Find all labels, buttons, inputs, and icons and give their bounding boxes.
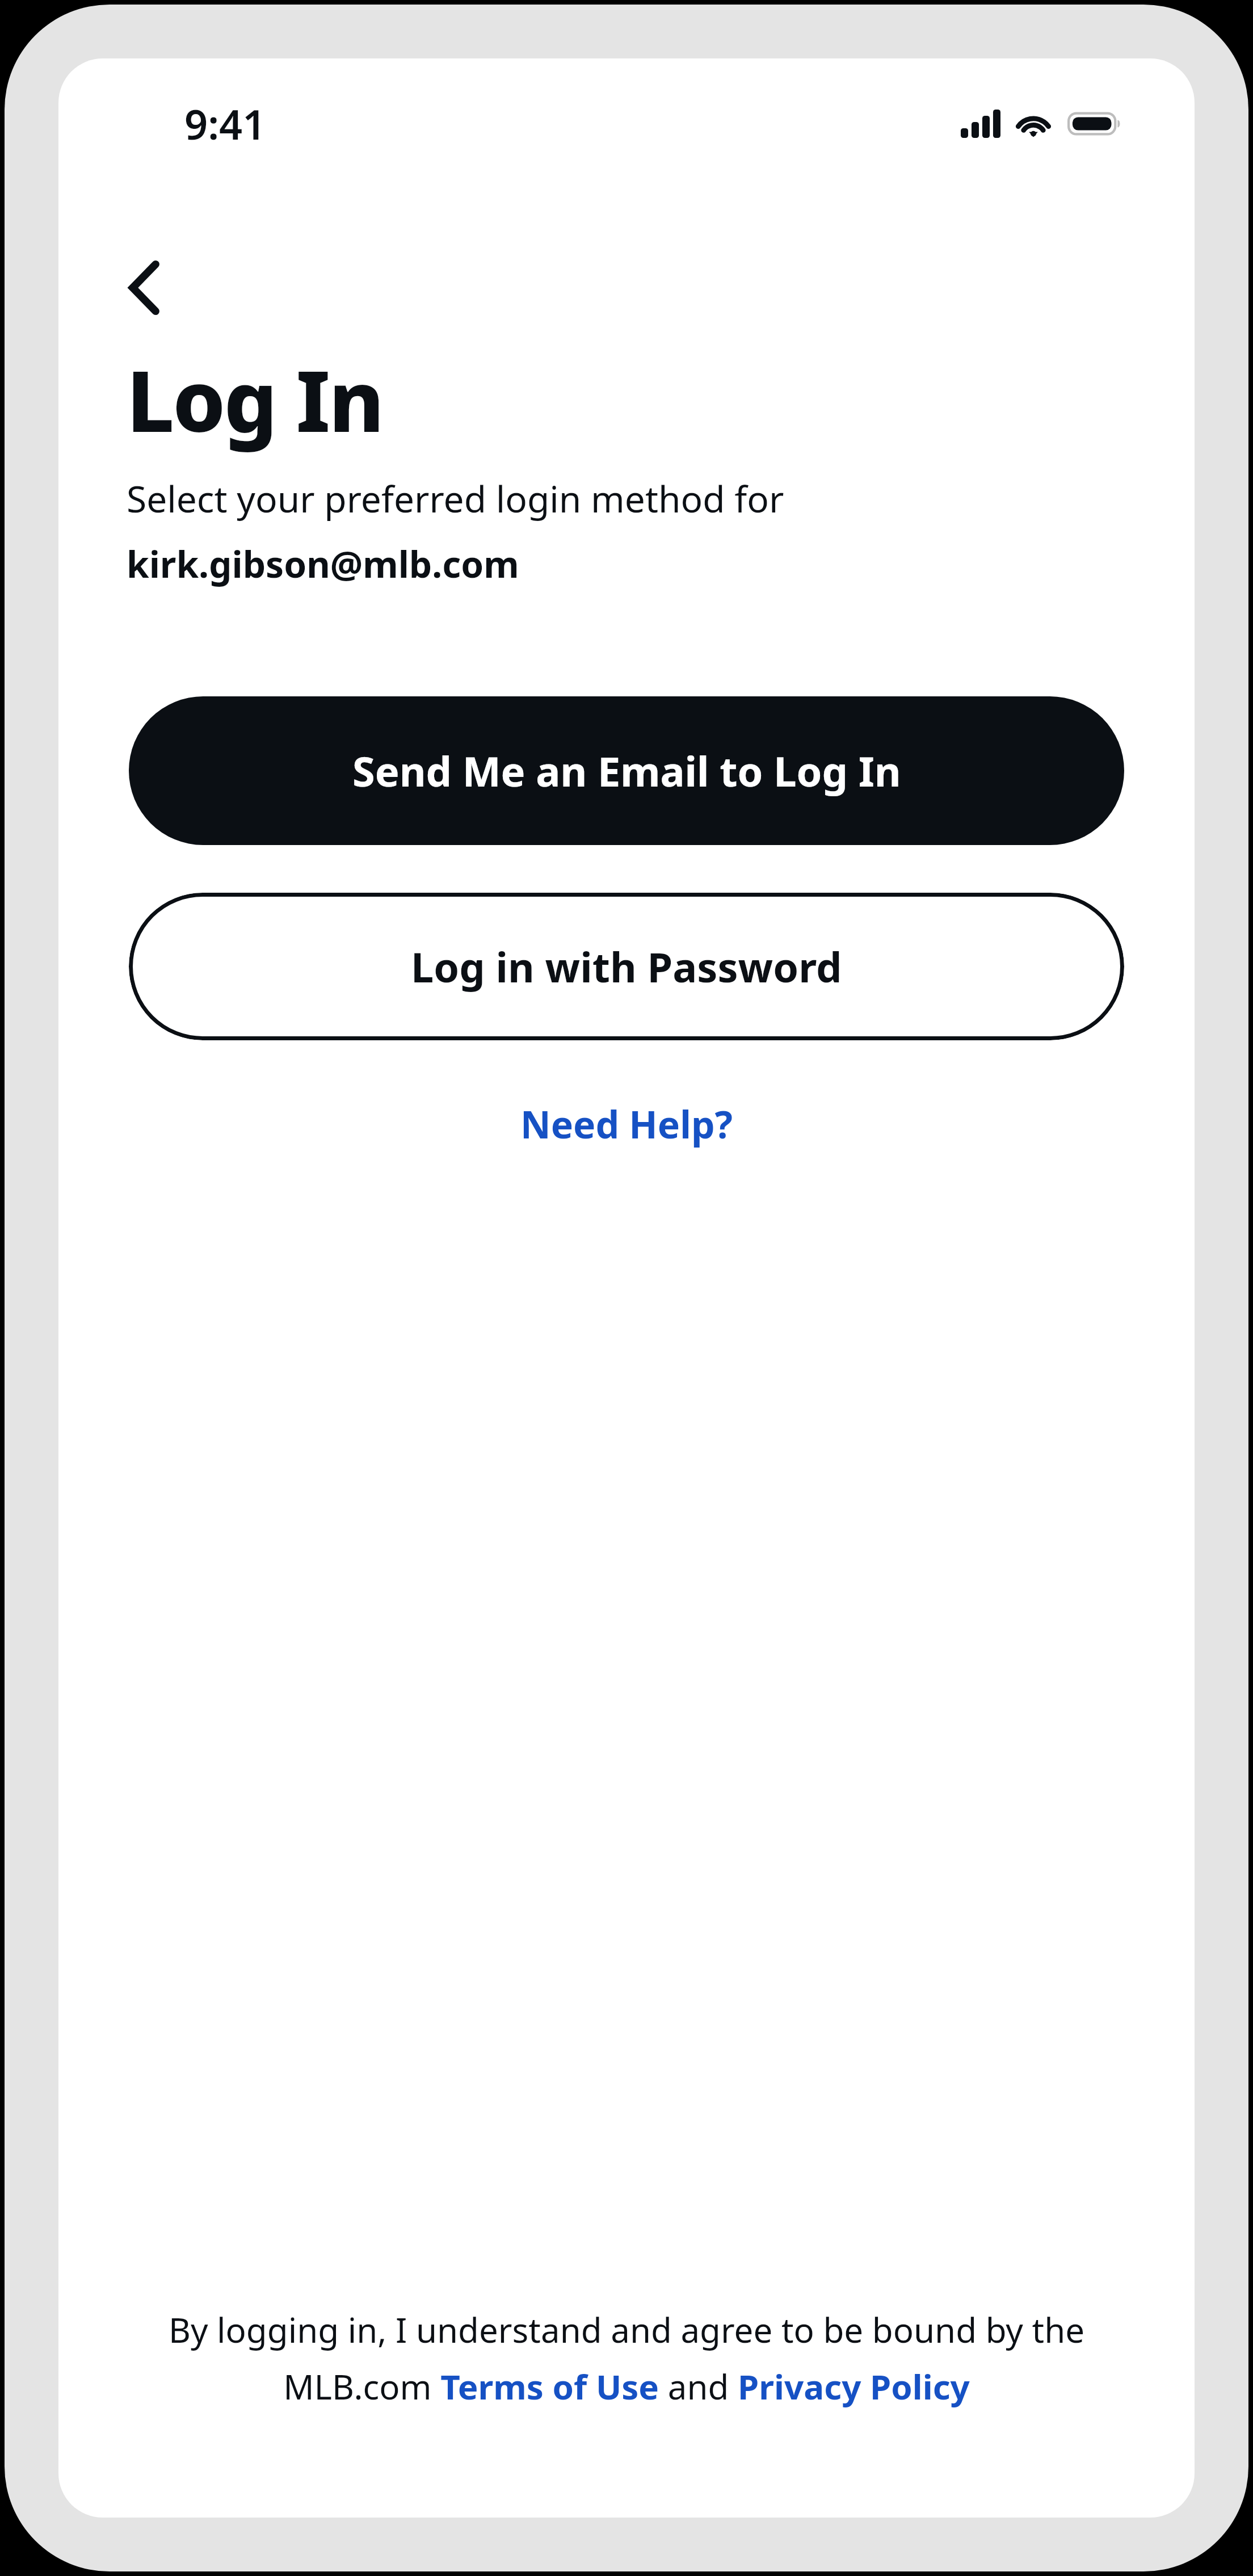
staticText: Log In xyxy=(127,342,383,457)
staticText: By logging in, I understand and agree to… xyxy=(127,2306,1126,2410)
staticText: Need Help? xyxy=(520,1098,733,1149)
staticText: kirk.gibson@mlb.com xyxy=(127,539,519,589)
button[interactable]: Log in with Password xyxy=(129,893,1124,1040)
staticText: Log in with Password xyxy=(411,939,842,994)
staticText: Send Me an Email to Log In xyxy=(352,743,901,799)
button[interactable]: Need Help? xyxy=(507,1090,747,1157)
button[interactable]: Back xyxy=(103,246,187,330)
staticText: 9:41 xyxy=(184,96,266,152)
button[interactable]: Send Me an Email to Log In xyxy=(129,696,1124,845)
button[interactable]: By logging in, I understand and agree to… xyxy=(58,2306,1195,2410)
staticText: Select your preferred login method for xyxy=(127,474,784,523)
